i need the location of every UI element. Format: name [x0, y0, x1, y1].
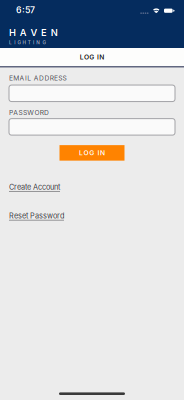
- staticText: H: [9, 27, 16, 38]
- staticText: LOG IN: [79, 149, 105, 157]
- staticText: V: [30, 27, 37, 38]
- staticText: I: [33, 40, 34, 45]
- staticText: I: [14, 40, 15, 45]
- staticText: A: [20, 27, 27, 38]
- button[interactable]: Create Account: [9, 183, 60, 191]
- staticText: L: [9, 40, 12, 45]
- staticText: T: [28, 40, 31, 45]
- staticText: N: [36, 40, 40, 45]
- staticText: PASSWORD: [9, 109, 49, 117]
- staticText: LOG IN: [80, 53, 104, 61]
- staticText: E: [41, 27, 47, 38]
- staticText: 6:57: [16, 5, 35, 15]
- staticText: EMAIL ADDRESS: [9, 74, 67, 82]
- button[interactable]: LOG IN: [59, 145, 124, 161]
- staticText: G: [17, 40, 20, 45]
- staticText: N: [51, 27, 58, 38]
- button[interactable]: Reset Password: [9, 211, 64, 220]
- staticText: G: [42, 40, 45, 45]
- staticText: Reset Password: [9, 211, 64, 220]
- staticText: Create Account: [9, 183, 60, 191]
- staticText: H: [23, 40, 26, 45]
